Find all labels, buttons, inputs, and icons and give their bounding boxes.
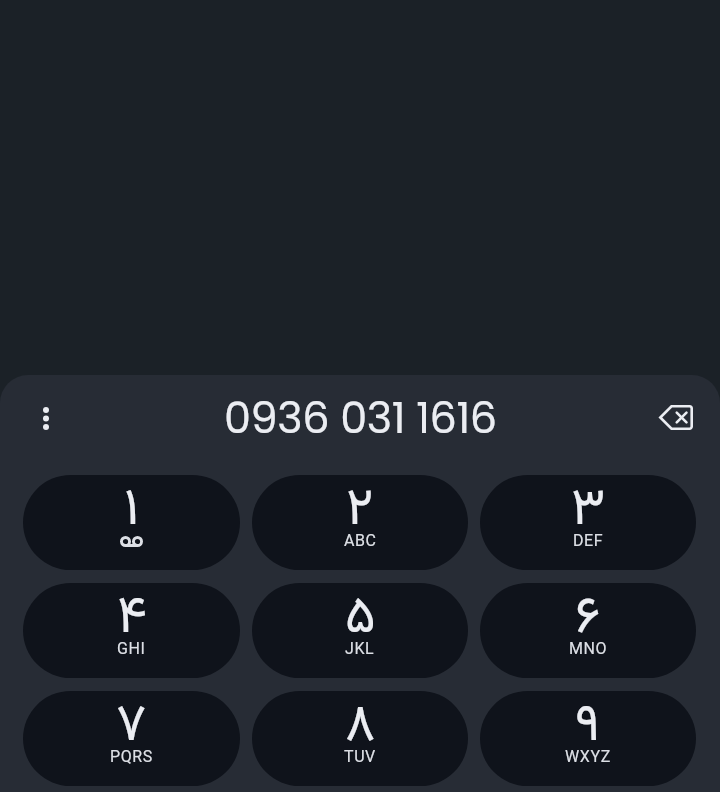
- staticText: GHI: [117, 639, 146, 658]
- staticText: PQRS: [110, 747, 153, 766]
- staticText: ۹: [575, 691, 601, 768]
- button[interactable]: ۴: [23, 583, 240, 678]
- button[interactable]: ۹: [480, 691, 696, 786]
- button[interactable]: ۶: [480, 583, 696, 678]
- staticText: ۴: [117, 583, 147, 660]
- staticText: ۷: [116, 691, 147, 768]
- staticText: JKL: [345, 639, 375, 658]
- button[interactable]: More options: [22, 394, 70, 442]
- staticText: WXYZ: [565, 747, 611, 766]
- staticText: ۶: [575, 583, 601, 660]
- button[interactable]: ۱: [23, 475, 240, 570]
- button[interactable]: Backspace: [652, 393, 700, 441]
- staticText: DEF: [573, 531, 604, 550]
- button[interactable]: ۸: [252, 691, 468, 786]
- button[interactable]: ۲: [252, 475, 468, 570]
- button[interactable]: ۷: [23, 691, 240, 786]
- staticText: ۲: [346, 475, 374, 552]
- staticText: ۸: [345, 691, 376, 768]
- button[interactable]: ۵: [252, 583, 468, 678]
- staticText: ABC: [344, 531, 377, 550]
- button[interactable]: ۳: [480, 475, 696, 570]
- staticText: ۵: [345, 583, 376, 660]
- staticText: TUV: [344, 747, 376, 766]
- staticText: 0936 031 1616: [224, 388, 497, 448]
- staticText: ۳: [571, 475, 606, 552]
- staticText: MNO: [569, 639, 608, 658]
- staticText: ۱: [124, 475, 140, 552]
